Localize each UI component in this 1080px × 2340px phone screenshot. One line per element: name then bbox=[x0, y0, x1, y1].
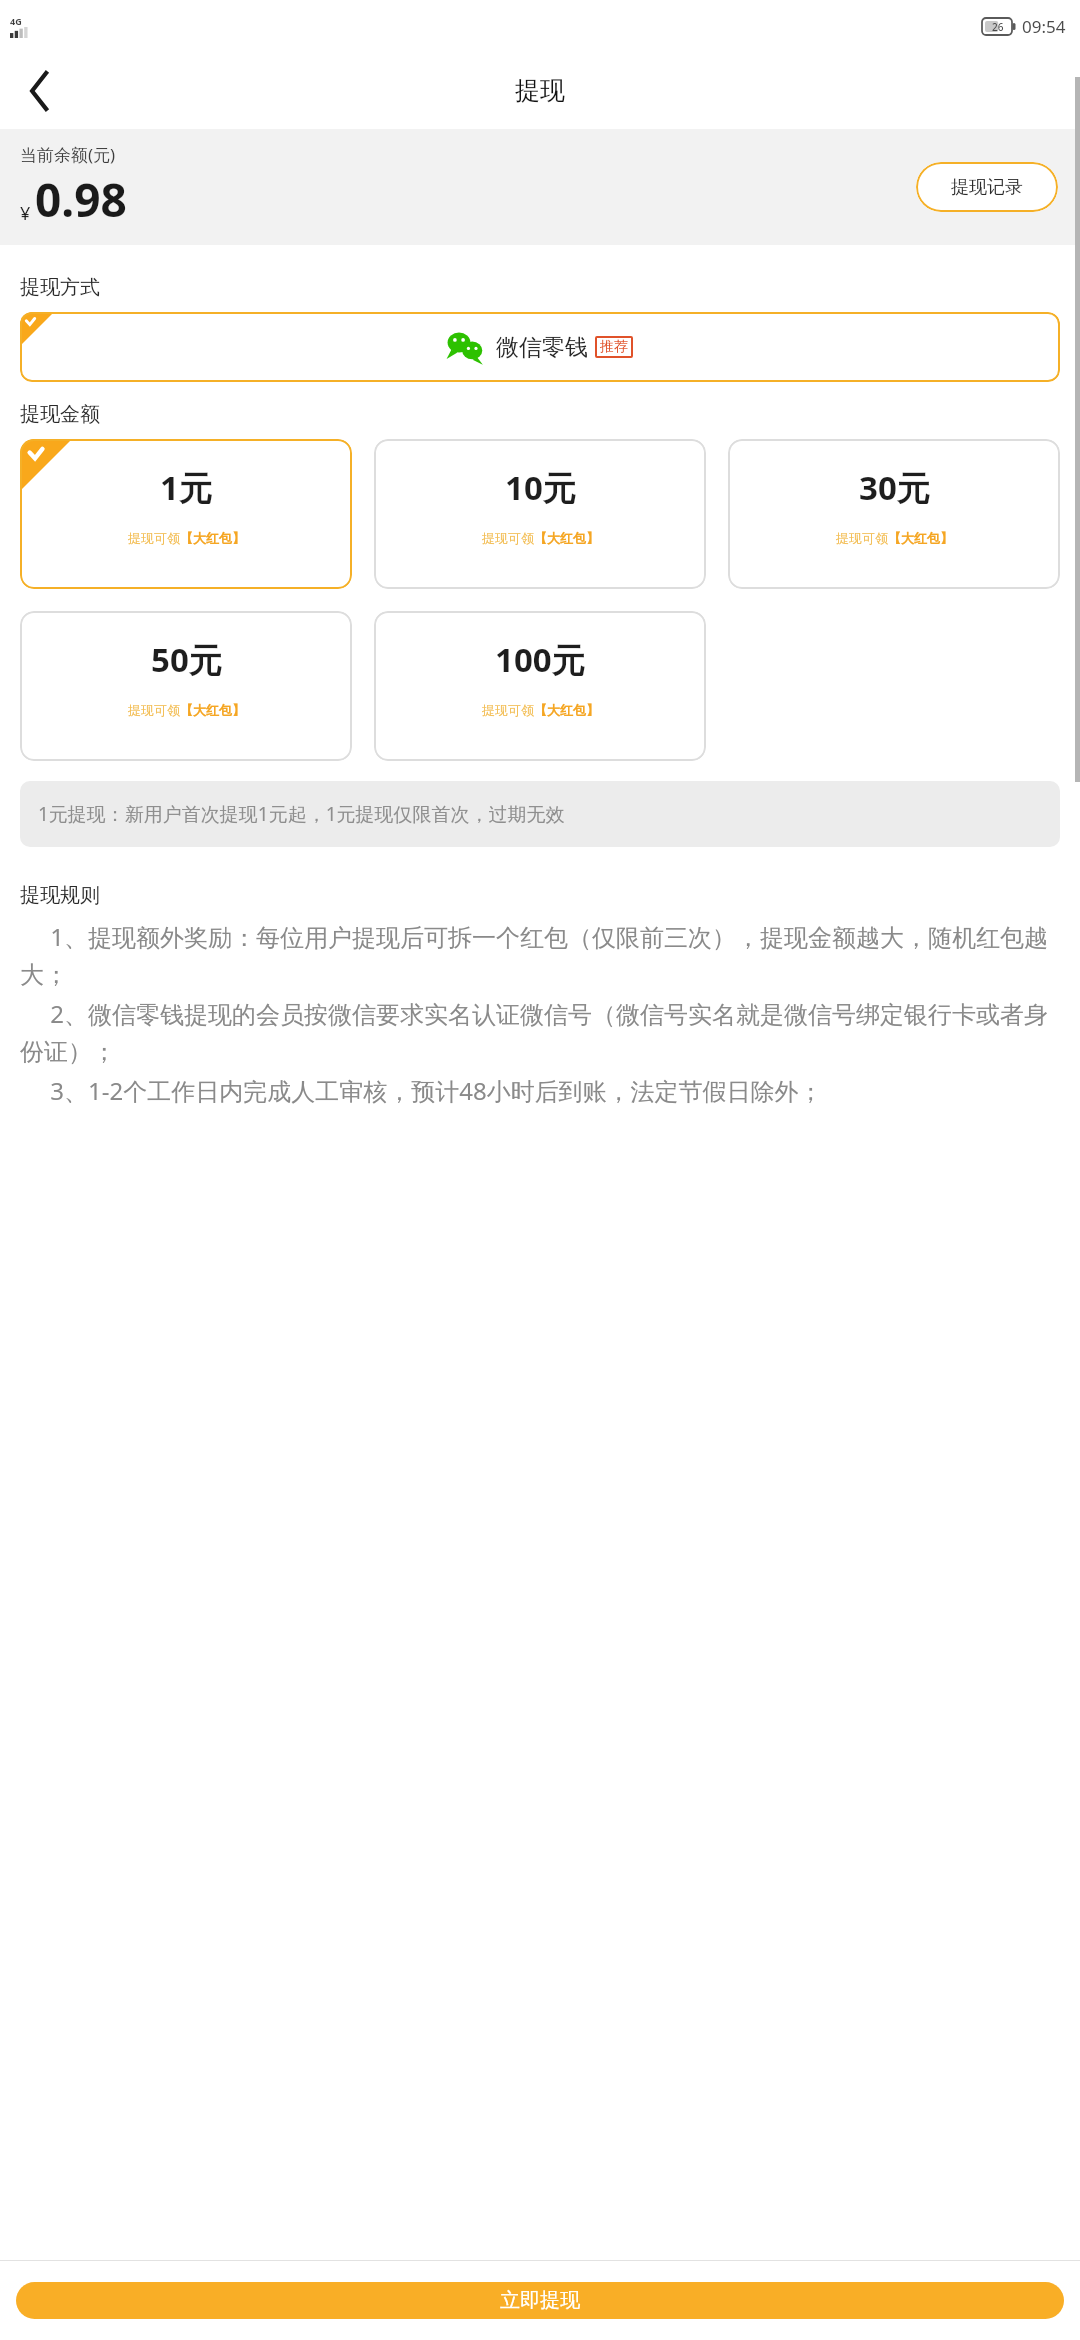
staticText: 4G bbox=[10, 15, 22, 27]
staticText: 09:54 bbox=[1022, 15, 1066, 38]
button[interactable]: Back bbox=[12, 63, 68, 119]
staticText: 提现可领【大红包】 bbox=[128, 530, 245, 546]
staticText: ¥ bbox=[20, 201, 31, 226]
staticText: 提现可领【大红包】 bbox=[482, 530, 599, 546]
staticText: 提现记录 bbox=[951, 176, 1023, 199]
staticText: 微信零钱 bbox=[496, 333, 588, 362]
staticText: 提现方式 bbox=[20, 275, 100, 300]
staticText: 提现金额 bbox=[20, 402, 100, 427]
staticText: 当前余额(元) bbox=[20, 143, 116, 166]
staticText: 提现可领【大红包】 bbox=[128, 702, 245, 718]
staticText: 30元 bbox=[859, 465, 930, 510]
staticText: 10元 bbox=[505, 465, 576, 510]
staticText: 提现规则 bbox=[20, 883, 100, 908]
staticText: 0.98 bbox=[35, 168, 127, 231]
staticText: 1元提现：新用户首次提现1元起，1元提现仅限首次，过期无效 bbox=[38, 801, 565, 827]
staticText: 提现 bbox=[515, 75, 565, 106]
staticText: 1元 bbox=[160, 465, 212, 510]
button[interactable]: 提现记录 bbox=[916, 162, 1058, 212]
staticText: 提现可领【大红包】 bbox=[482, 702, 599, 718]
staticText: 提现可领【大红包】 bbox=[836, 530, 953, 546]
button[interactable]: 立即提现 bbox=[16, 2282, 1064, 2319]
staticText: 26 bbox=[992, 20, 1004, 34]
button[interactable]: 100元 bbox=[374, 611, 706, 761]
button[interactable]: 1元 bbox=[20, 439, 352, 589]
button[interactable]: 微信零钱 bbox=[20, 312, 1060, 382]
staticText: 1、提现额外奖励：每位用户提现后可拆一个红包（仅限前三次），提现金额越大，随机红… bbox=[20, 920, 1060, 1107]
button[interactable]: 10元 bbox=[374, 439, 706, 589]
staticText: 100元 bbox=[495, 637, 585, 682]
staticText: 50元 bbox=[151, 637, 222, 682]
staticText: 立即提现 bbox=[500, 2288, 580, 2313]
button[interactable]: 30元 bbox=[728, 439, 1060, 589]
staticText: 推荐 bbox=[600, 338, 628, 356]
button[interactable]: 50元 bbox=[20, 611, 352, 761]
